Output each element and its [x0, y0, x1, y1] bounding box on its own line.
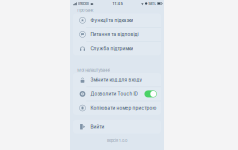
staticText: 58% — [148, 1, 156, 6]
staticText: Служба підтримки — [90, 46, 133, 51]
staticText: 11:45 — [112, 1, 122, 6]
button[interactable]: Дозволити Touch ID — [73, 87, 161, 101]
button[interactable]: Питання та відповіді — [73, 27, 161, 41]
button[interactable]: Змінити код для входу — [73, 73, 161, 87]
button[interactable]: Функції та підказки — [73, 13, 161, 27]
staticText: Дозволити Touch ID — [90, 91, 137, 97]
staticText: Про банк — [77, 8, 93, 13]
staticText: Мої налаштування — [77, 68, 110, 73]
staticText: Вийти — [90, 124, 104, 129]
staticText: Питання та відповіді — [90, 32, 138, 37]
staticText: Функції та підказки — [90, 17, 133, 23]
button[interactable]: Служба підтримки — [73, 42, 161, 55]
staticText: Копіювати номер пристрою — [90, 105, 156, 111]
button[interactable]: Вийти — [73, 120, 161, 134]
staticText: версія 1.0.0 — [107, 138, 127, 143]
button[interactable]: Копіювати номер пристрою — [73, 101, 161, 115]
staticText: lifecell — [78, 1, 89, 6]
staticText: Змінити код для входу — [90, 77, 142, 83]
